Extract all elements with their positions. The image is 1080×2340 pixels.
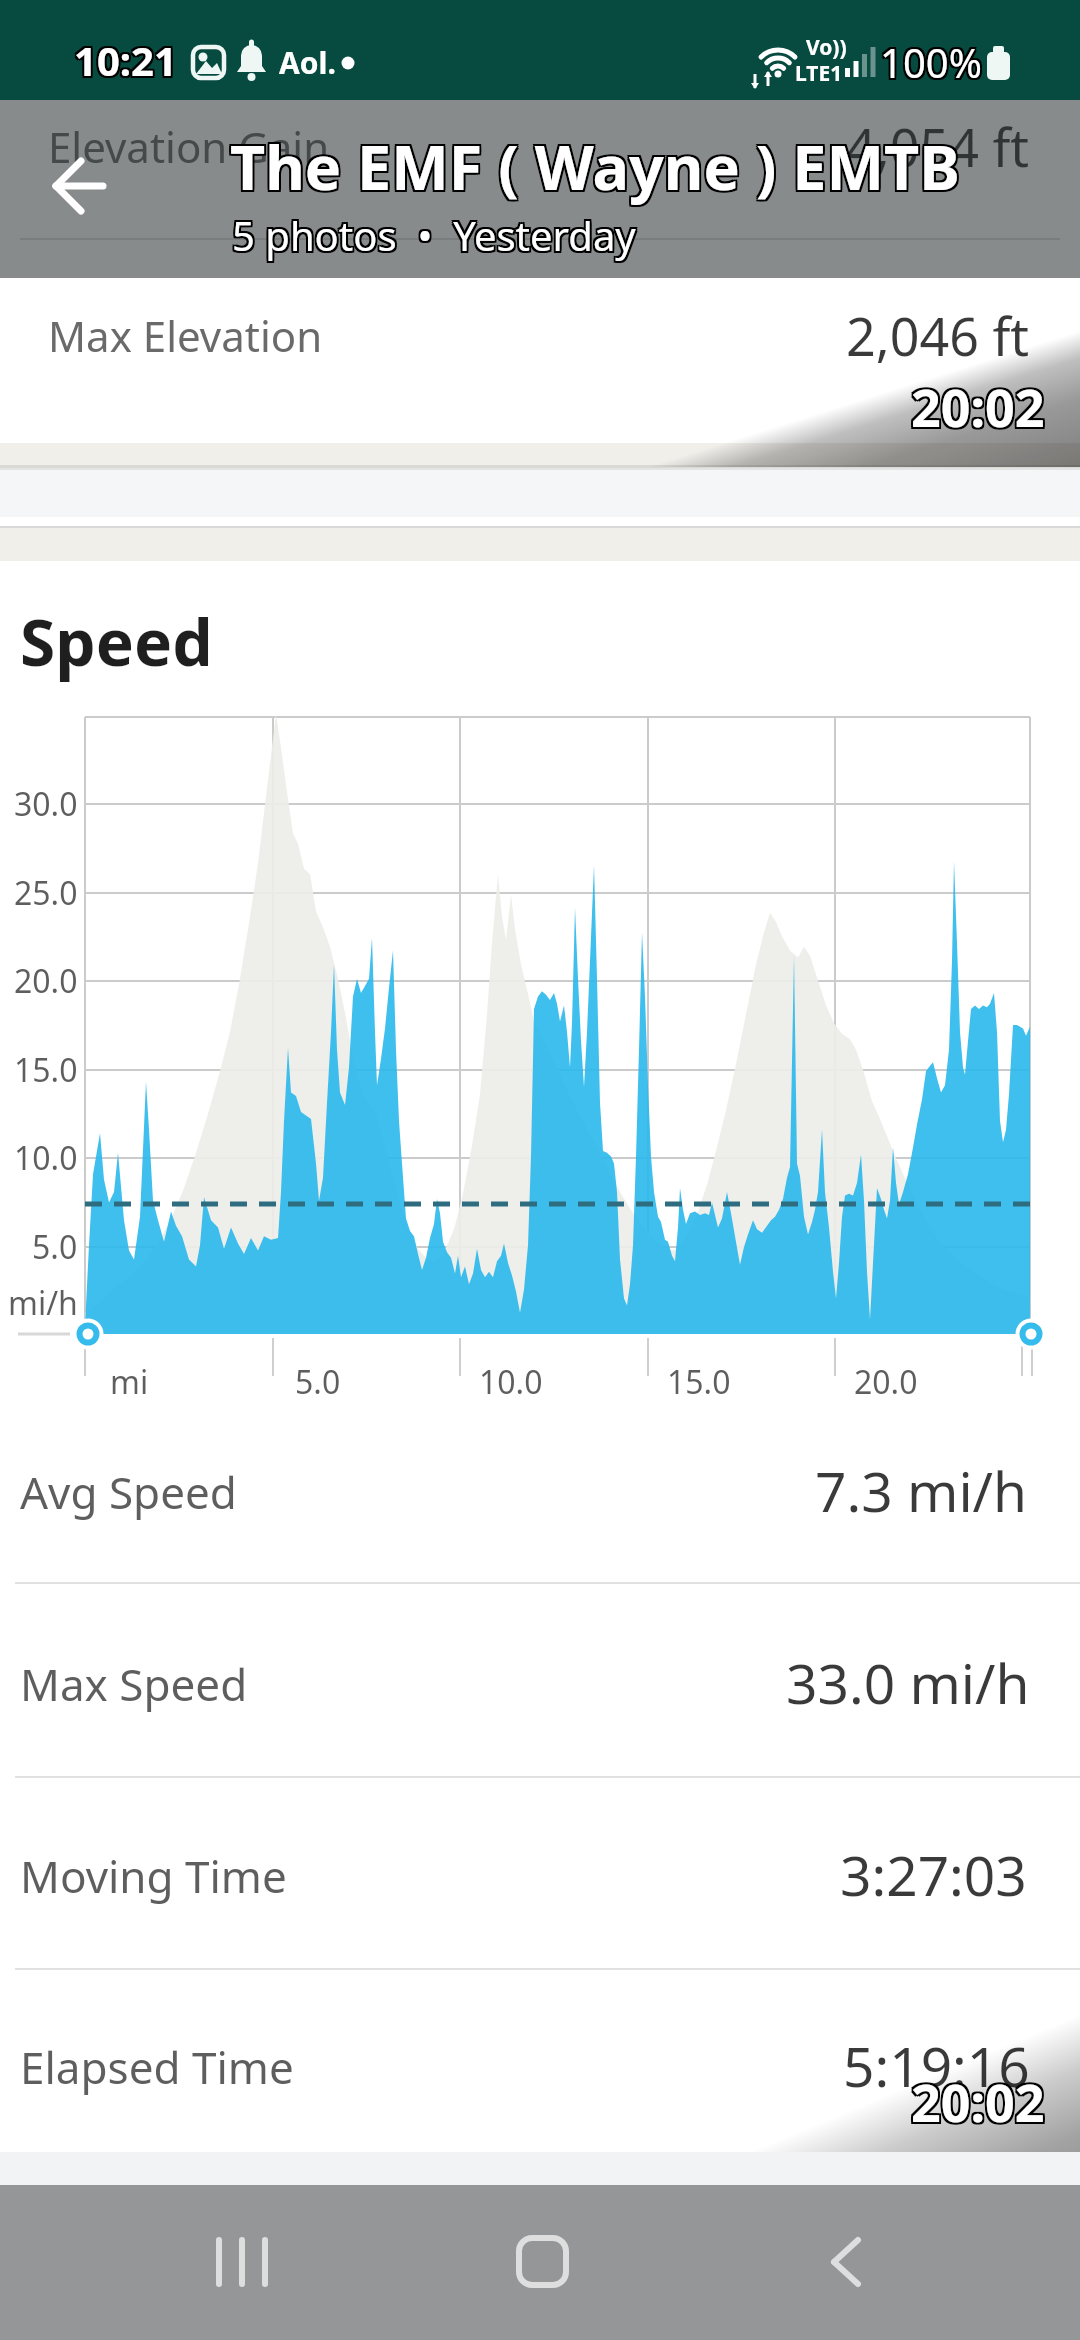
staticText: 20:02 [913, 2068, 1047, 2139]
staticText: 100% [880, 33, 982, 87]
staticText: 10:21 [74, 35, 177, 89]
staticText: Speed [20, 598, 213, 685]
staticText: The EMF ( Wayne ) EMTB [228, 123, 958, 206]
staticText: 25.0 [14, 871, 78, 915]
staticText: 20:02 [913, 373, 1047, 444]
staticText: Max Elevation [48, 307, 323, 364]
staticText: 20:02 [913, 371, 1047, 442]
staticText: LTE1 [795, 59, 843, 88]
staticText: 100% [882, 37, 984, 91]
staticText: 20:02 [909, 2068, 1043, 2139]
staticText: Elevation Gain [48, 118, 330, 175]
staticText: 10:21 [72, 31, 175, 85]
staticText: 100% [878, 35, 980, 89]
staticText: The EMF ( Wayne ) EMTB [228, 125, 958, 208]
staticText: 30.0 [14, 782, 78, 826]
staticText: The EMF ( Wayne ) EMTB [230, 123, 960, 206]
staticText: The EMF ( Wayne ) EMTB [232, 123, 962, 206]
staticText: 5 photos • Yesterday [232, 208, 636, 262]
button[interactable] [30, 140, 130, 235]
staticText: 20:02 [909, 371, 1043, 442]
staticText: 10:21 [72, 35, 175, 89]
staticText: 20:02 [913, 2064, 1047, 2135]
staticText: 2,046 ft [846, 300, 1030, 371]
staticText: 4,054 ft [846, 111, 1030, 182]
staticText: 20.0 [14, 959, 78, 1003]
staticText: 20:02 [911, 2064, 1045, 2135]
staticText: 100% [878, 37, 980, 91]
staticText: 5 photos • Yesterday [232, 206, 636, 260]
button[interactable] [780, 2200, 920, 2320]
button[interactable] [480, 2200, 620, 2320]
staticText: 20:02 [911, 371, 1045, 442]
staticText: 10:21 [74, 33, 177, 87]
staticText: The EMF ( Wayne ) EMTB [228, 127, 958, 210]
staticText: 5 photos • Yesterday [230, 210, 634, 264]
staticText: 10:21 [76, 31, 179, 85]
staticText: 20:02 [909, 373, 1043, 444]
staticText: 20:02 [909, 2066, 1043, 2137]
staticText: 100% [882, 35, 984, 89]
staticText: 20:02 [909, 2064, 1043, 2135]
staticText: Elapsed Time [20, 2037, 294, 2097]
staticText: 5 photos • Yesterday [234, 208, 638, 262]
staticText: 5 photos • Yesterday [230, 208, 634, 262]
staticText: 10:21 [72, 33, 175, 87]
staticText: 5.0 [32, 1225, 78, 1269]
staticText: 20:02 [911, 2066, 1045, 2137]
staticText: Avg Speed [20, 1462, 237, 1522]
staticText: The EMF ( Wayne ) EMTB [230, 127, 960, 210]
staticText: 33.0 mi/h [786, 1645, 1030, 1720]
staticText: 20:02 [913, 369, 1047, 440]
staticText: 5 photos • Yesterday [234, 210, 638, 264]
staticText: 7.3 mi/h [815, 1453, 1028, 1528]
staticText: Aol. [279, 42, 336, 83]
staticText: Moving Time [20, 1846, 287, 1906]
staticText: Vo)) [806, 33, 847, 62]
staticText: mi [110, 1360, 149, 1404]
staticText: 10.0 [479, 1360, 543, 1404]
staticText: 20:02 [911, 369, 1045, 440]
staticText: 5.0 [295, 1360, 341, 1404]
staticText: 10:21 [76, 33, 179, 87]
staticText: 100% [880, 35, 982, 89]
staticText: 20.0 [854, 1360, 918, 1404]
staticText: 20:02 [909, 369, 1043, 440]
staticText: The EMF ( Wayne ) EMTB [230, 125, 960, 208]
staticText: 15.0 [667, 1360, 731, 1404]
button[interactable] [180, 2200, 320, 2320]
staticText: 20:02 [911, 373, 1045, 444]
staticText: 100% [880, 37, 982, 91]
staticText: The EMF ( Wayne ) EMTB [232, 127, 962, 210]
staticText: Max Speed [20, 1654, 248, 1714]
staticText: 3:27:03 [840, 1837, 1027, 1912]
staticText: 10:21 [74, 31, 177, 85]
staticText: 5 photos • Yesterday [234, 206, 638, 260]
staticText: mi/h [8, 1281, 78, 1325]
staticText: 10:21 [76, 35, 179, 89]
staticText: 20:02 [913, 2066, 1047, 2137]
staticText: 100% [882, 33, 984, 87]
staticText: 10.0 [14, 1136, 78, 1180]
staticText: 5 photos • Yesterday [230, 206, 634, 260]
staticText: 100% [878, 33, 980, 87]
staticText: The EMF ( Wayne ) EMTB [232, 125, 962, 208]
staticText: 5:19:16 [843, 2028, 1030, 2103]
staticText: 15.0 [14, 1048, 78, 1092]
staticText: 20:02 [911, 2068, 1045, 2139]
staticText: 5 photos • Yesterday [232, 210, 636, 264]
